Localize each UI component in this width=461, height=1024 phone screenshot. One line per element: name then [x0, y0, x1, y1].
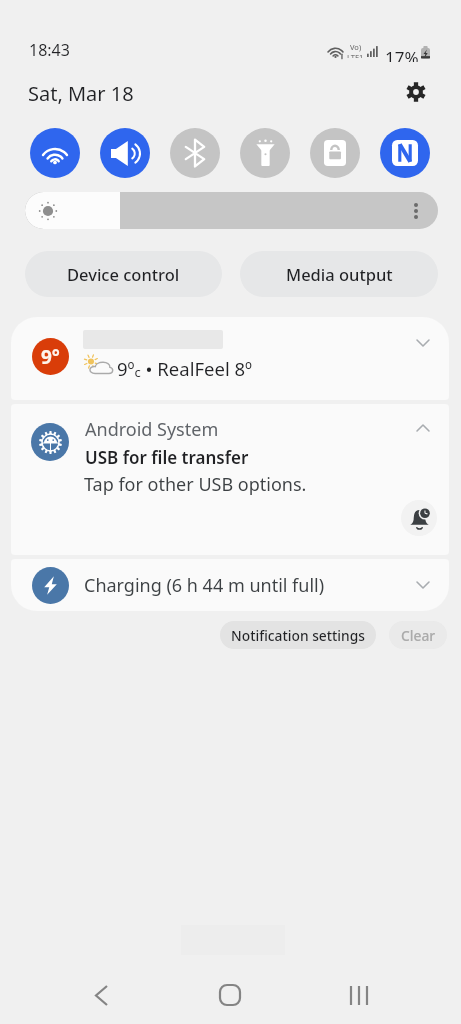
- button[interactable]: Back: [71, 965, 131, 1024]
- staticText: Sat, Mar 18: [28, 80, 134, 107]
- staticText: 17%: [385, 46, 419, 62]
- button[interactable]: Notification settings: [220, 621, 376, 649]
- button[interactable]: Wi-Fi: [30, 128, 80, 178]
- button[interactable]: Flashlight: [240, 128, 290, 178]
- staticText: Charging (6 h 44 m until full): [84, 573, 325, 598]
- staticText: Notification settings: [231, 626, 365, 645]
- button[interactable]: Bluetooth: [170, 128, 220, 178]
- staticText: Media output: [286, 263, 393, 285]
- staticText: Android System: [85, 417, 219, 442]
- staticText: 9°: [41, 344, 60, 370]
- button[interactable]: Media output: [240, 251, 438, 297]
- button[interactable]: 9°: [11, 317, 449, 400]
- button[interactable]: Home: [200, 965, 260, 1024]
- staticText: 9ºc • RealFeel 8º: [117, 356, 253, 381]
- button[interactable]: Auto rotate: [310, 128, 360, 178]
- staticText: Vo): [350, 42, 362, 52]
- button[interactable]: Brightness: [25, 192, 438, 229]
- button[interactable]: Charging (6 h 44 m until full): [11, 559, 449, 611]
- staticText: Device control: [67, 263, 180, 285]
- button[interactable]: NFC: [380, 128, 430, 178]
- button[interactable]: Recents: [329, 965, 389, 1024]
- button[interactable]: Device control: [25, 251, 222, 297]
- button[interactable]: Sound: [100, 128, 150, 178]
- staticText: Tap for other USB options.: [84, 472, 307, 497]
- button[interactable]: Android System: [11, 404, 449, 555]
- button[interactable]: Snooze: [401, 500, 437, 536]
- staticText: LTE1: [347, 52, 364, 58]
- button[interactable]: Clear: [389, 621, 447, 649]
- staticText: Clear: [401, 626, 436, 645]
- button[interactable]: Settings: [399, 75, 433, 109]
- staticText: 18:43: [29, 39, 70, 61]
- staticText: USB for file transfer: [85, 446, 249, 469]
